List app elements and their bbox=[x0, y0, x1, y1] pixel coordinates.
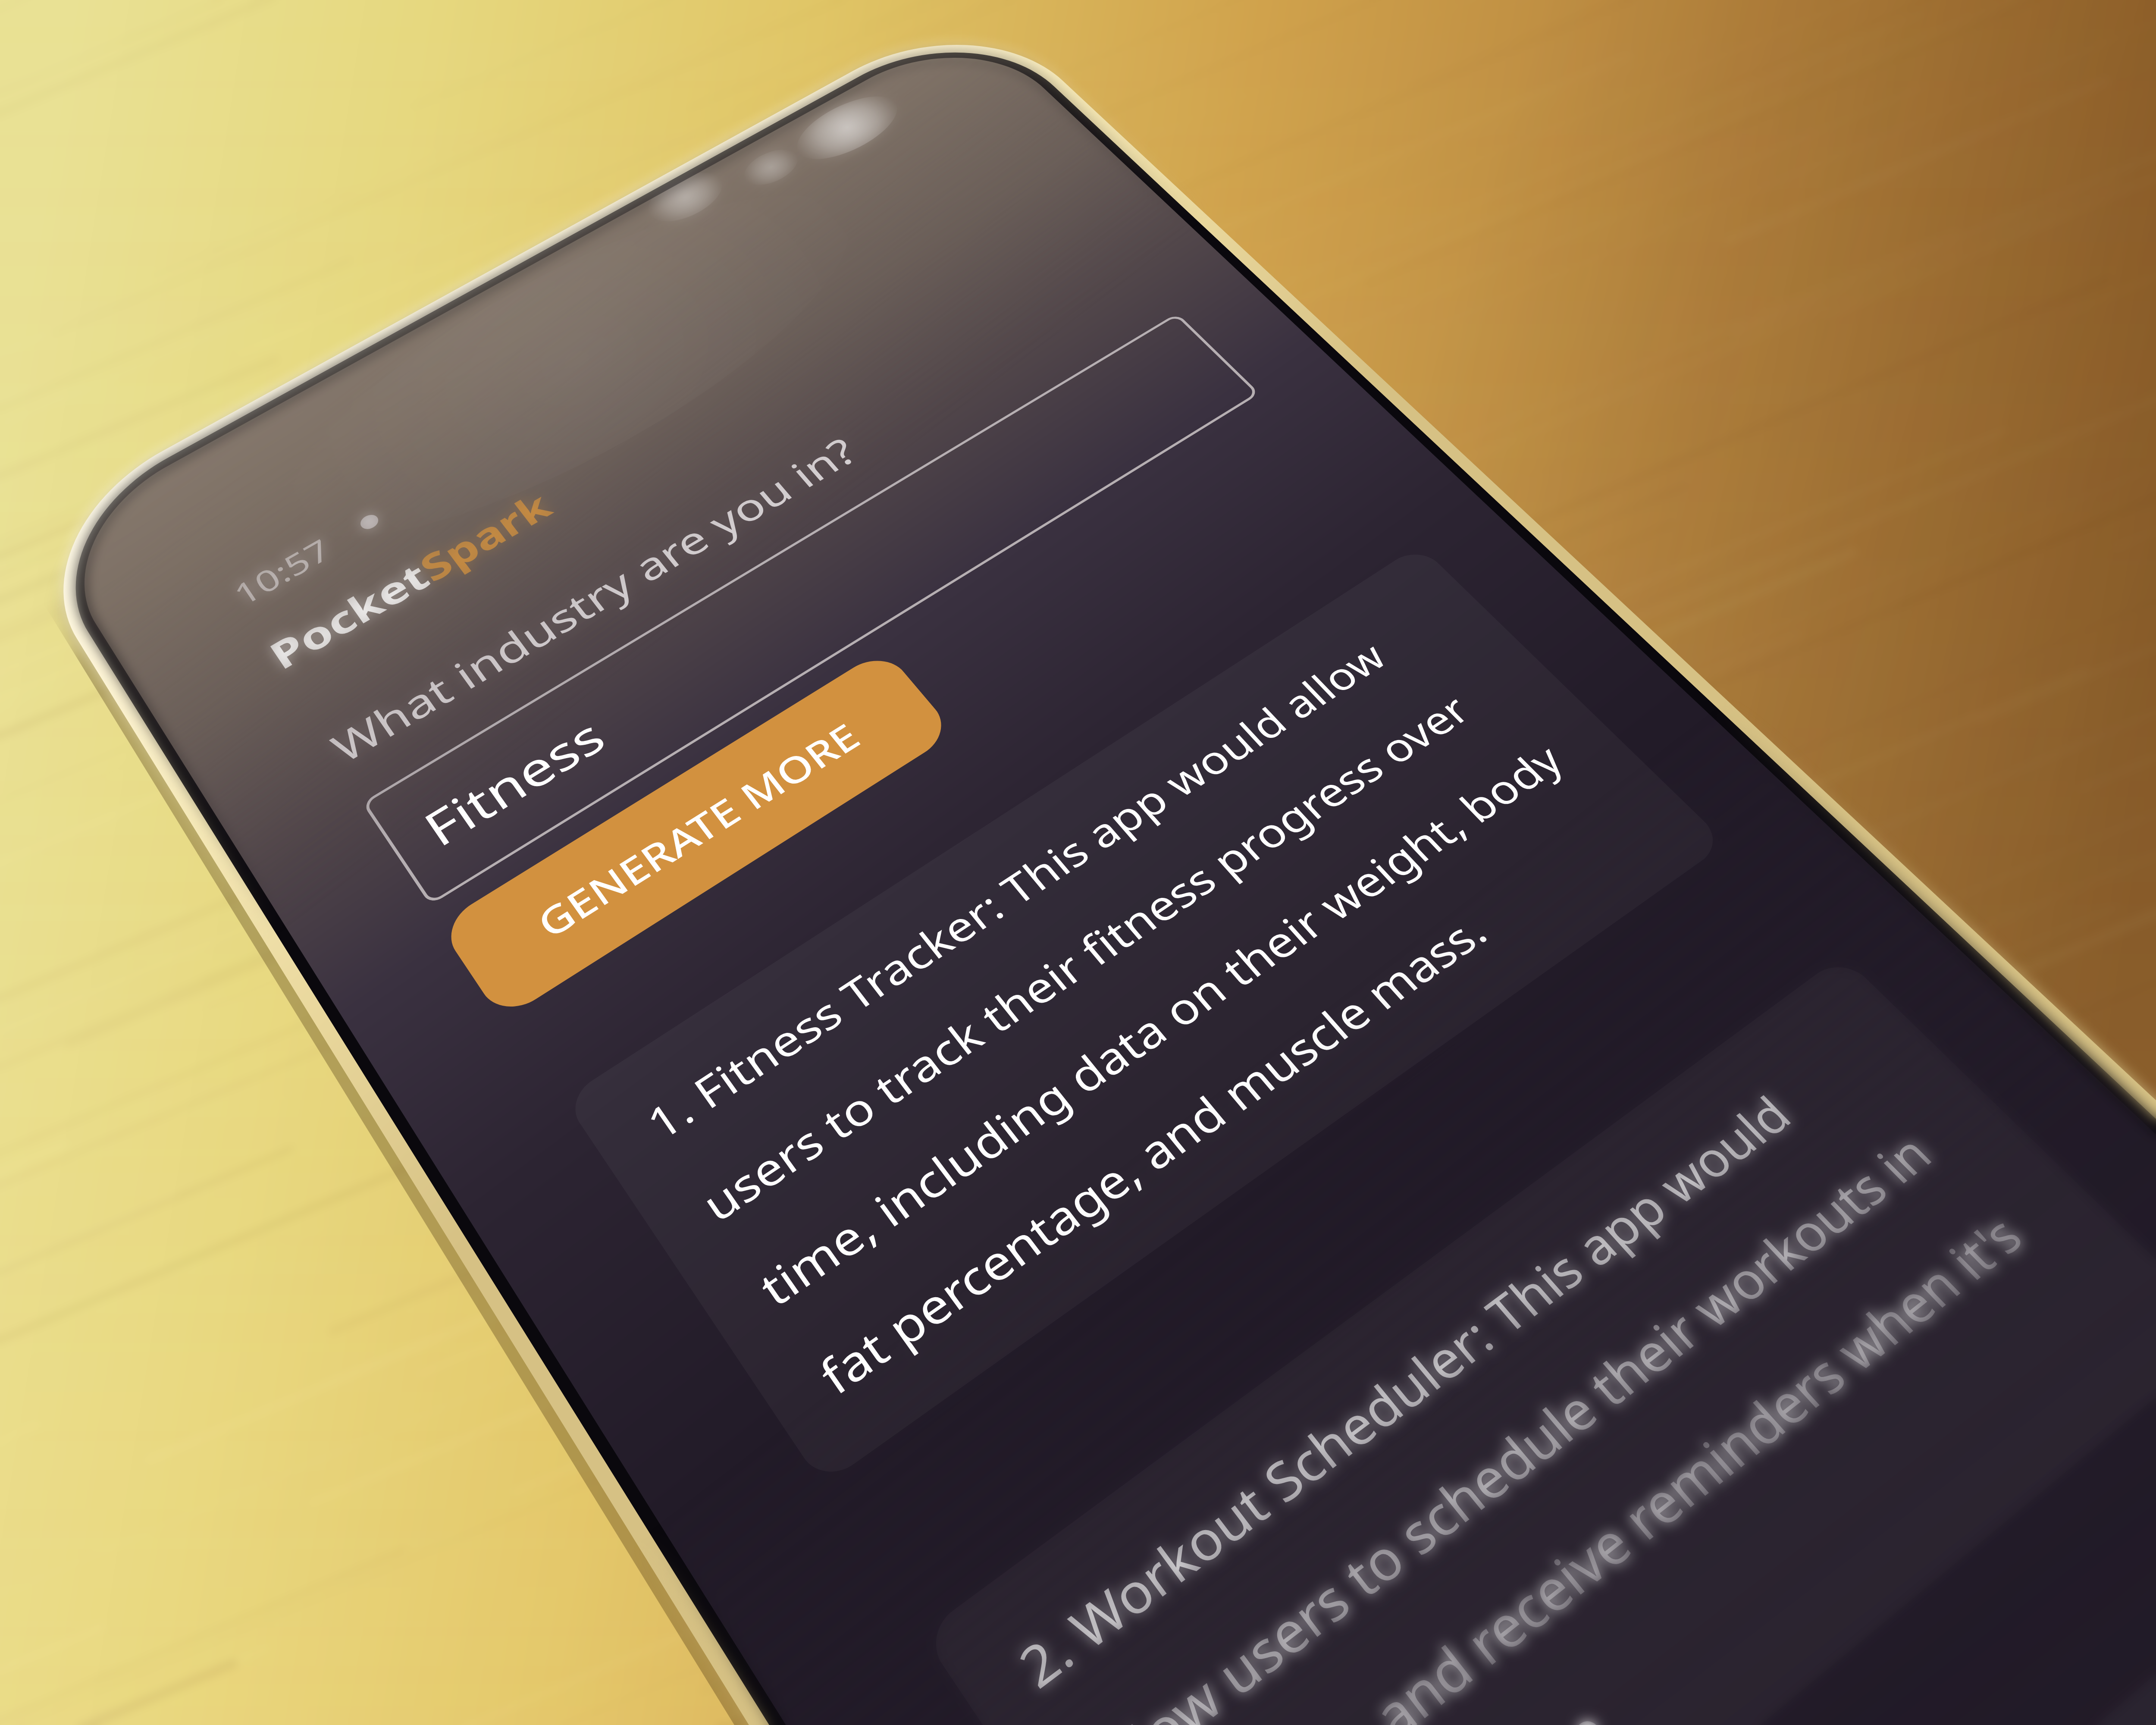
staticText: 3. Nutrition Tracker: This app would all… bbox=[1490, 1562, 2156, 1725]
button[interactable]: 2. Workout Scheduler: This app would all… bbox=[922, 955, 2156, 1725]
staticText: Spark bbox=[409, 481, 561, 592]
button[interactable]: 1. Fitness Tracker: This app would allow… bbox=[564, 545, 1727, 1486]
button[interactable]: 2. Workout Scheduler: This app would all… bbox=[922, 955, 2156, 1725]
staticText: GENERATE MORE bbox=[527, 712, 870, 949]
button[interactable]: Fitness bbox=[362, 313, 1260, 905]
staticText: What industry are you in? bbox=[321, 427, 868, 774]
button[interactable]: Fitness bbox=[362, 313, 1260, 905]
staticText: Pocket bbox=[259, 551, 439, 680]
staticText: What industry are you in? bbox=[321, 427, 868, 774]
staticText: 1. Fitness Tracker: This app would allow… bbox=[635, 598, 1653, 1408]
button[interactable]: 3. Nutrition Tracker: This app would all… bbox=[1392, 1478, 2156, 1725]
staticText: Fitness bbox=[411, 705, 617, 860]
other: Notification indicator bbox=[347, 504, 391, 540]
staticText: Fitness bbox=[411, 705, 617, 860]
staticText: Spark bbox=[409, 481, 561, 592]
staticText: GENERATE MORE bbox=[527, 712, 870, 949]
other: Notification indicator bbox=[347, 504, 391, 540]
staticText: 2. Workout Scheduler: This app would all… bbox=[1004, 1021, 2147, 1725]
staticText: 10:57 bbox=[226, 530, 339, 614]
staticText: 2. Workout Scheduler: This app would all… bbox=[1004, 1021, 2147, 1725]
staticText: 10:57 bbox=[226, 530, 339, 614]
button[interactable]: GENERATE MORE bbox=[438, 649, 955, 1021]
button[interactable]: GENERATE MORE bbox=[438, 649, 955, 1021]
staticText: 1. Fitness Tracker: This app would allow… bbox=[635, 598, 1653, 1408]
button[interactable]: 3. Nutrition Tracker: This app would all… bbox=[1392, 1478, 2156, 1725]
button[interactable]: 1. Fitness Tracker: This app would allow… bbox=[564, 545, 1727, 1486]
staticText: 3. Nutrition Tracker: This app would all… bbox=[1490, 1562, 2156, 1725]
staticText: Pocket bbox=[259, 551, 439, 680]
